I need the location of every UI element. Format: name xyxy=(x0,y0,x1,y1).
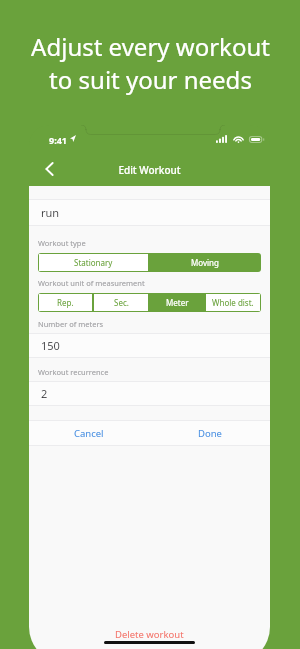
staticText: Workout unit of measurement xyxy=(38,278,145,288)
button[interactable]: Sec. xyxy=(94,294,148,311)
staticText: 2 xyxy=(41,386,48,401)
staticText: Edit Workout xyxy=(29,163,270,177)
staticText: Delete workout xyxy=(115,628,184,641)
staticText: Meter xyxy=(166,297,189,308)
button[interactable]: Back xyxy=(35,155,63,183)
staticText: to suit your needs xyxy=(49,63,252,96)
button[interactable]: Done xyxy=(149,421,270,445)
staticText: Workout recurrence xyxy=(38,367,109,377)
staticText: Whole dist. xyxy=(212,297,254,308)
staticText: Rep. xyxy=(57,297,74,308)
staticText: Done xyxy=(198,427,222,440)
button[interactable]: Cancel xyxy=(29,421,149,445)
staticText: Cancel xyxy=(74,427,104,440)
staticText: Stationary xyxy=(74,257,113,268)
staticText: Moving xyxy=(191,257,219,268)
button[interactable]: Moving xyxy=(150,254,260,271)
button[interactable]: Meter xyxy=(150,294,204,311)
staticText: Number of meters xyxy=(38,319,104,329)
staticText: Sec. xyxy=(114,297,129,308)
staticText: 9:41 xyxy=(49,134,67,146)
staticText: 150 xyxy=(41,338,60,353)
staticText: run xyxy=(41,205,60,220)
button[interactable]: Stationary xyxy=(39,254,148,271)
button[interactable]: Delete workout xyxy=(29,627,270,641)
staticText: Workout type xyxy=(38,238,86,248)
staticText: Adjust every workout xyxy=(31,30,270,63)
button[interactable]: Rep. xyxy=(39,294,92,311)
button[interactable]: Whole dist. xyxy=(206,294,260,311)
